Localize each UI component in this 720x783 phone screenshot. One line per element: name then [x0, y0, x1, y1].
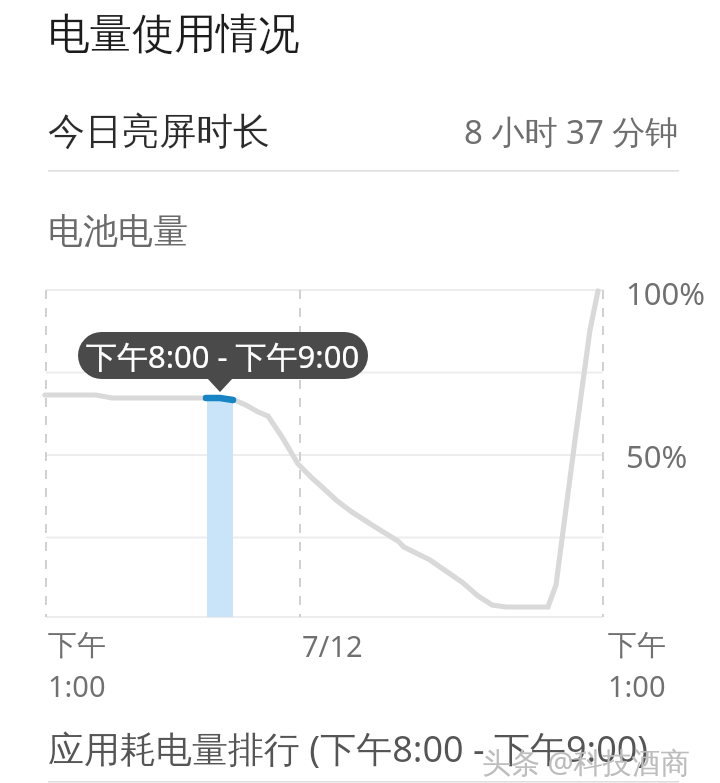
- button[interactable]: Battery usage screen: [0, 0, 720, 783]
